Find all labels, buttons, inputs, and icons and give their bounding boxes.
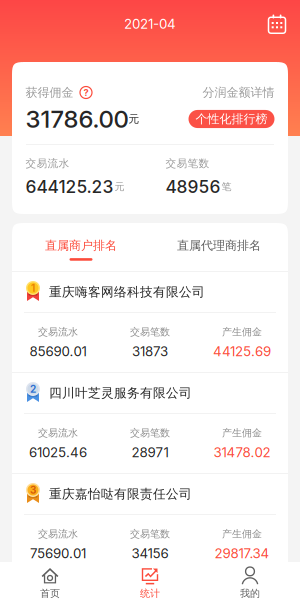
staticText: ?: [83, 87, 88, 98]
staticText: 获得佣金: [25, 85, 73, 100]
staticText: 直属代理商排名: [177, 238, 261, 253]
staticText: 元: [128, 112, 139, 126]
staticText: 交易流水: [38, 427, 78, 439]
button[interactable]: 2: [12, 373, 288, 473]
staticText: 1: [31, 282, 35, 294]
button[interactable]: Select month: [261, 7, 293, 40]
staticText: 重庆嘉怡哒有限责任公司: [49, 486, 192, 502]
staticText: 笔: [221, 180, 231, 193]
button[interactable]: 分润金额详情: [202, 85, 274, 100]
staticText: 产生佣金: [222, 427, 262, 439]
staticText: 29817.34: [214, 545, 269, 561]
button[interactable]: 直属代理商排名: [150, 223, 288, 271]
button[interactable]: 1: [12, 272, 288, 372]
staticText: 85690.01: [29, 343, 86, 359]
staticText: 交易笔数: [130, 528, 170, 540]
staticText: 75690.01: [30, 545, 86, 561]
staticText: 交易笔数: [130, 326, 170, 338]
staticText: 产生佣金: [222, 528, 262, 540]
staticText: 2021-04: [124, 16, 176, 32]
button[interactable]: 个性化排行榜: [188, 110, 274, 128]
staticText: 四川叶芝灵服务有限公司: [49, 385, 192, 401]
staticText: 44125.69: [213, 343, 271, 359]
button[interactable]: 首页: [0, 562, 100, 600]
staticText: 统计: [140, 587, 160, 600]
staticText: 644125.23: [25, 176, 113, 197]
staticText: 31478.02: [213, 444, 270, 460]
staticText: 31786.00: [25, 104, 128, 133]
staticText: 分润金额详情: [202, 85, 274, 100]
staticText: 3: [30, 484, 36, 496]
staticText: 首页: [40, 587, 60, 600]
button[interactable]: 3: [12, 474, 288, 574]
staticText: 28971: [131, 444, 168, 460]
staticText: 31873: [132, 343, 168, 359]
staticText: 48956: [165, 176, 220, 197]
button[interactable]: Commission help: [73, 86, 92, 99]
staticText: 交易笔数: [165, 157, 209, 170]
staticText: 元: [114, 180, 124, 193]
staticText: 重庆嗨客网络科技有限公司: [49, 284, 205, 300]
staticText: 我的: [240, 587, 260, 600]
staticText: 交易笔数: [130, 427, 170, 439]
staticText: 61025.46: [29, 444, 87, 460]
staticText: 直属商户排名: [45, 238, 117, 253]
button[interactable]: 直属商户排名: [12, 223, 150, 271]
button[interactable]: 统计: [100, 562, 200, 600]
staticText: 交易流水: [38, 528, 78, 540]
staticText: 交易流水: [38, 326, 78, 338]
staticText: 个性化排行榜: [195, 111, 267, 126]
button[interactable]: 我的: [200, 562, 300, 600]
staticText: 产生佣金: [222, 326, 262, 338]
staticText: 交易流水: [25, 157, 69, 170]
staticText: 34156: [131, 545, 168, 561]
staticText: 2: [30, 383, 36, 395]
